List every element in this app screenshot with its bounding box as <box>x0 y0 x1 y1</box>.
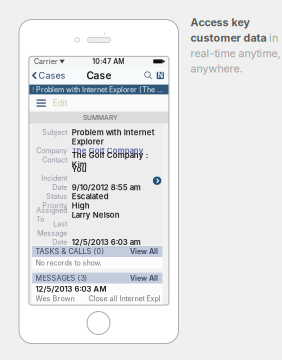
staticText: Priority <box>42 201 67 210</box>
staticText: You <box>72 164 87 174</box>
staticText: TASKS & CALLS (0) <box>36 247 105 256</box>
button[interactable]: Incident details <box>153 176 162 185</box>
staticText: Contact <box>42 156 67 164</box>
staticText: Incident <box>41 174 67 182</box>
button[interactable]: Cases <box>29 66 68 85</box>
staticText: Company <box>36 146 67 155</box>
staticText: MESSAGES (3) <box>36 274 88 282</box>
staticText: Status <box>46 192 67 201</box>
staticText: High <box>72 201 90 210</box>
button[interactable]: Search <box>142 70 154 81</box>
staticText: 10:47 AM <box>92 57 124 66</box>
staticText: ! <box>32 86 34 93</box>
button[interactable]: App switcher <box>154 70 166 81</box>
staticText: anywhere. <box>190 62 242 75</box>
staticText: 12/5/2013 6:03 am <box>72 238 141 247</box>
staticText: SUMMARY <box>83 114 118 122</box>
button[interactable]: Edit <box>49 93 71 113</box>
staticText: View All <box>130 274 158 282</box>
staticText: Assigned To <box>36 206 67 223</box>
staticText: Case <box>86 69 111 82</box>
staticText: 12/5/2013 6:03 AM <box>36 284 107 293</box>
staticText: Last <box>53 220 67 228</box>
button[interactable]: TASKS & CALLS (0) <box>32 246 162 257</box>
staticText: Message <box>37 229 67 237</box>
staticText: Explorer <box>72 137 104 146</box>
button[interactable]: Menu <box>33 95 49 111</box>
staticText: real-time anytime, <box>190 47 280 60</box>
staticText: Larry Nelson <box>72 210 120 219</box>
staticText: Cases <box>38 70 65 81</box>
staticText: The Golf Company <box>72 146 144 155</box>
staticText: Problem with Internet Explorer (The Golf… <box>36 85 167 94</box>
staticText: in <box>269 31 278 44</box>
staticText: N <box>158 71 163 80</box>
staticText: View All <box>130 247 158 256</box>
staticText: Access key <box>190 16 249 29</box>
staticText: Date <box>52 238 67 246</box>
staticText: customer data <box>190 31 266 44</box>
staticText: Close all Internet Expl <box>88 294 160 303</box>
staticText: Carrier <box>34 57 58 66</box>
staticText: Date <box>52 183 67 192</box>
staticText: Subject <box>42 128 67 137</box>
staticText: Edit <box>53 98 68 108</box>
button[interactable]: MESSAGES (3) <box>32 273 162 284</box>
staticText: Escalated <box>72 192 109 201</box>
staticText: Problem with Internet <box>72 128 155 137</box>
staticText: The Golf Company : Kim <box>72 151 148 169</box>
staticText: 9/10/2012 8:55 am <box>72 183 141 192</box>
staticText: No records to show. <box>36 258 102 267</box>
staticText: Wes Brown <box>36 294 75 303</box>
